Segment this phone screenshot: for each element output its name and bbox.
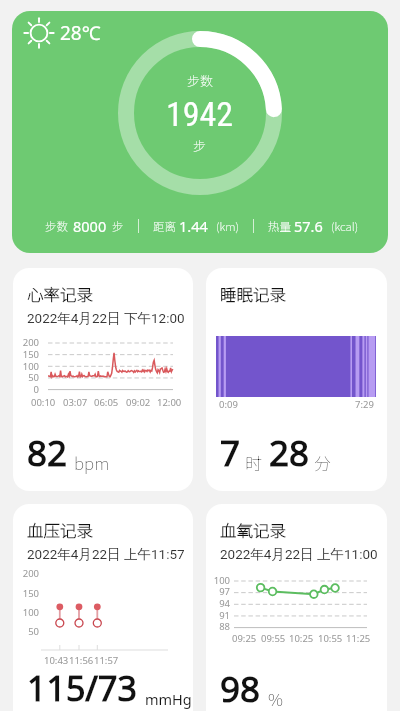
- staticText: 2022年4月22日 上午11:57: [27, 546, 185, 563]
- staticText: 82: [27, 429, 68, 477]
- staticText: 步: [112, 218, 124, 235]
- staticText: 100: [206, 574, 230, 587]
- button[interactable]: 血氧记录: [206, 504, 387, 711]
- button[interactable]: 心率记录: [13, 268, 193, 491]
- staticText: 热量: [268, 218, 291, 235]
- staticText: 150: [13, 587, 39, 600]
- staticText: 11:57: [94, 654, 119, 667]
- staticText: 88: [206, 620, 230, 633]
- staticText: 7:29: [355, 398, 374, 411]
- staticText: 0: [13, 383, 39, 396]
- staticText: 100: [13, 360, 39, 373]
- staticText: 10:55: [318, 632, 343, 645]
- staticText: 血氧记录: [220, 518, 286, 542]
- other: Weather: [24, 18, 54, 48]
- staticText: 150: [13, 348, 39, 361]
- staticText: 2022年4月22日 下午12:00: [27, 310, 185, 327]
- button[interactable]: 血压记录: [13, 504, 193, 711]
- staticText: 03:07: [63, 396, 88, 409]
- staticText: 06:05: [94, 396, 119, 409]
- staticText: 心率记录: [27, 282, 93, 306]
- staticText: 09:25: [232, 632, 257, 645]
- staticText: 步: [193, 136, 207, 155]
- staticText: 09:55: [261, 632, 286, 645]
- staticText: 8000: [73, 216, 107, 236]
- staticText: %: [268, 686, 283, 711]
- staticText: 28℃: [60, 20, 101, 46]
- staticText: 0:09: [219, 398, 238, 411]
- staticText: 10:43: [44, 654, 69, 667]
- staticText: 100: [13, 606, 39, 619]
- staticText: 12:00: [157, 396, 182, 409]
- staticText: (km): [216, 218, 239, 235]
- staticText: 00:10: [31, 396, 56, 409]
- staticText: 2022年4月22日 上午11:00: [220, 546, 378, 563]
- staticText: bpm: [74, 450, 110, 475]
- staticText: (kcal): [331, 218, 359, 235]
- staticText: 1.44: [179, 216, 208, 236]
- button[interactable]: 睡眠记录: [206, 268, 387, 491]
- staticText: 57.6: [294, 216, 323, 236]
- staticText: 距离: [153, 218, 176, 235]
- staticText: 09:02: [126, 396, 151, 409]
- staticText: 睡眠记录: [220, 282, 286, 306]
- staticText: 分: [314, 450, 331, 475]
- button[interactable]: Weather: [12, 11, 388, 253]
- staticText: 28: [269, 429, 310, 477]
- staticText: mmHg: [145, 689, 192, 709]
- staticText: 11:25: [346, 632, 371, 645]
- staticText: 94: [206, 597, 230, 610]
- staticText: 血压记录: [27, 518, 93, 542]
- staticText: 50: [13, 625, 39, 638]
- staticText: 115/73: [27, 665, 137, 711]
- staticText: 91: [206, 609, 230, 622]
- staticText: 200: [13, 336, 39, 349]
- staticText: 97: [206, 585, 230, 598]
- staticText: 1942: [166, 94, 234, 134]
- staticText: 98: [220, 665, 261, 711]
- staticText: 步数: [45, 218, 68, 235]
- staticText: 10:25: [289, 632, 314, 645]
- staticText: 时: [245, 450, 262, 475]
- staticText: 步数: [187, 71, 214, 90]
- staticText: 200: [13, 567, 39, 580]
- staticText: 7: [220, 429, 241, 477]
- staticText: 50: [13, 371, 39, 384]
- staticText: 11:56: [69, 654, 94, 667]
